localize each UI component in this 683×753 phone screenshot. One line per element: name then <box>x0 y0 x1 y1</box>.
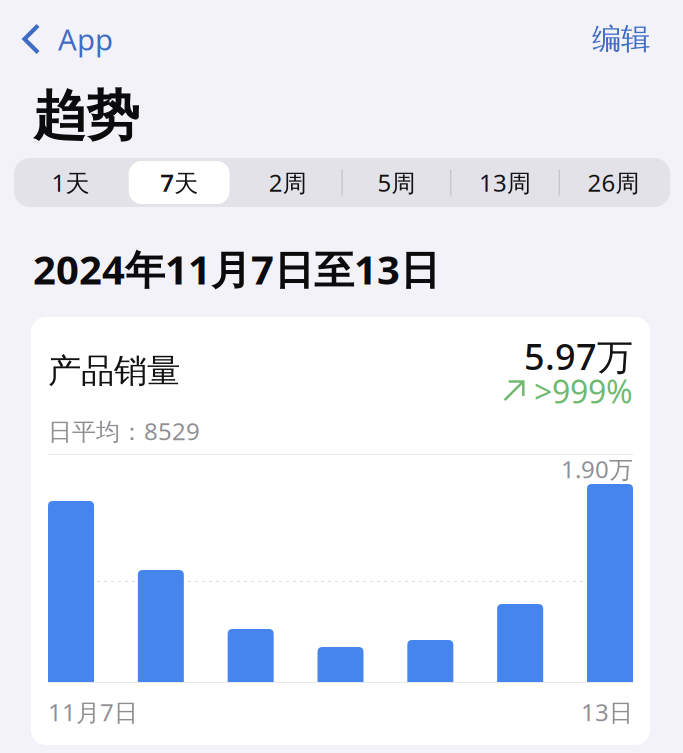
staticText: 13周 <box>479 167 531 198</box>
staticText: 5周 <box>377 167 415 198</box>
staticText: 编辑 <box>592 21 650 57</box>
staticText: App <box>58 19 113 58</box>
button[interactable]: 13周 <box>451 161 559 204</box>
button[interactable]: 5周 <box>343 161 450 204</box>
staticText: >999% <box>534 370 633 412</box>
staticText: 1天 <box>52 167 90 198</box>
staticText: 7天 <box>160 167 198 198</box>
button[interactable]: 26周 <box>560 161 667 204</box>
button[interactable]: 7天 <box>126 161 233 204</box>
staticText: 11月7日 <box>48 696 138 728</box>
staticText: 趋势 <box>33 83 139 149</box>
staticText: 日平均：8529 <box>48 415 200 447</box>
staticText: 2024年11月7日至13日 <box>33 242 440 295</box>
button[interactable]: 编辑 <box>570 19 683 59</box>
staticText: 5.97万 <box>524 332 633 380</box>
staticText: 13日 <box>581 696 633 728</box>
staticText: 26周 <box>588 167 640 198</box>
button[interactable]: 1天 <box>17 161 124 204</box>
staticText: 1.90万 <box>561 453 633 485</box>
button[interactable]: App <box>0 19 127 59</box>
staticText: 产品销量 <box>48 350 180 391</box>
button[interactable]: 2周 <box>234 161 341 204</box>
staticText: 2周 <box>269 167 307 198</box>
